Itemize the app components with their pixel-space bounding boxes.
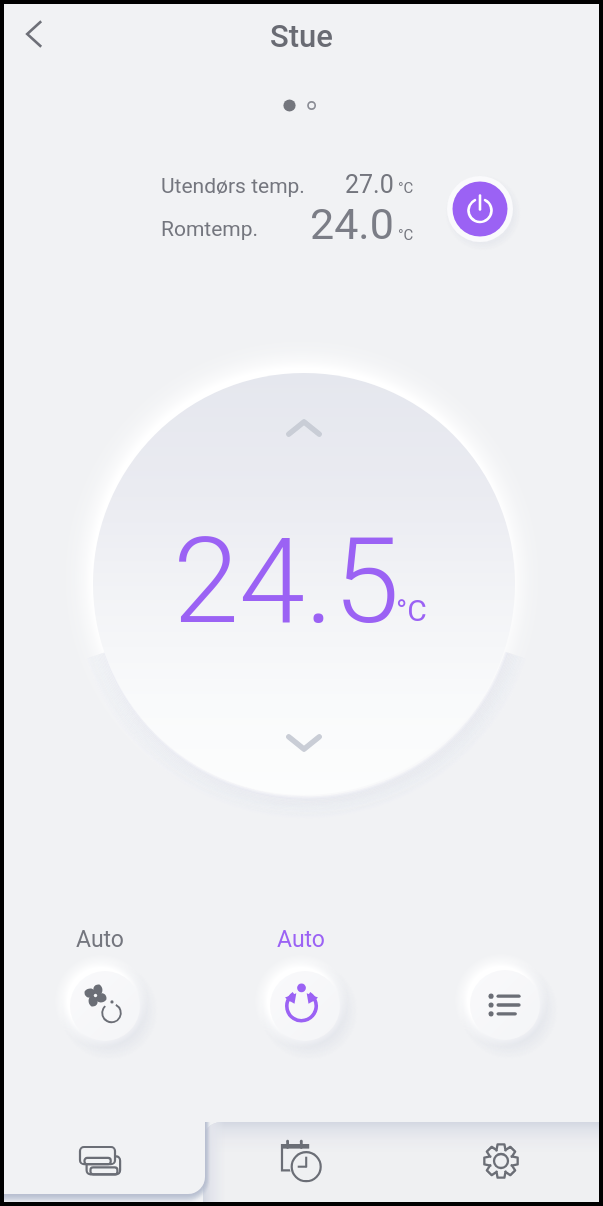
staticText: Romtemp. — [161, 217, 259, 242]
button[interactable]: Schedule — [205, 1122, 405, 1202]
button[interactable]: Air conditioner — [4, 1122, 205, 1202]
staticText: °C — [398, 226, 414, 244]
button[interactable]: Settings — [405, 1122, 599, 1202]
staticText: 24.0 — [310, 199, 394, 249]
staticText: °C — [398, 179, 414, 197]
staticText: 24.5 — [173, 512, 400, 651]
button[interactable]: Increase temperature — [274, 398, 334, 458]
staticText: 27.0 — [345, 170, 394, 199]
button[interactable]: Back — [11, 11, 59, 59]
staticText: Stue — [4, 18, 599, 54]
staticText: Utendørs temp. — [161, 174, 305, 199]
button[interactable]: Decrease temperature — [274, 713, 334, 773]
staticText: °C — [396, 593, 427, 628]
button[interactable]: More options — [470, 970, 540, 1040]
button[interactable]: Fan speed auto — [70, 971, 140, 1041]
button[interactable]: Power — [444, 173, 516, 245]
button[interactable]: Mode auto — [270, 971, 340, 1041]
staticText: Auto — [59, 926, 141, 953]
staticText: Auto — [260, 926, 342, 953]
